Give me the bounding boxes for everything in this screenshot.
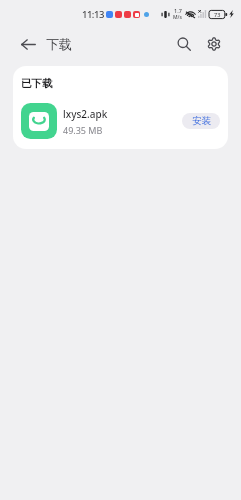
button[interactable]: lxys2.apk [13, 103, 228, 149]
button[interactable]: Settings [199, 29, 229, 59]
button[interactable]: 安装 [182, 113, 220, 129]
staticText: 安装 [192, 115, 211, 127]
button[interactable]: Back [11, 27, 45, 61]
staticText: 下载 [46, 36, 72, 52]
staticText: lxys2.apk [63, 107, 108, 121]
staticText: 已下载 [21, 77, 53, 90]
button[interactable]: Search [169, 29, 199, 59]
staticText: 11:13 [82, 8, 104, 21]
staticText: 73 [214, 11, 221, 18]
staticText: 49.35 MB [63, 124, 103, 136]
staticText: M/s [173, 14, 182, 21]
staticText: 1.7 [174, 7, 182, 14]
